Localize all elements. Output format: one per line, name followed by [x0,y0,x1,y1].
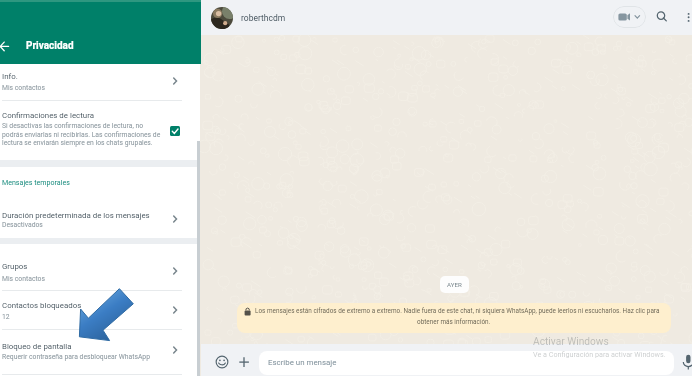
staticText: Activar Windows [533,336,609,348]
staticText: Si desactivas las confirmaciones de lect… [2,122,144,130]
staticText: Info. [2,72,18,81]
staticText: obtener más información. [417,318,491,326]
staticText: Mis contactos [2,275,45,283]
button[interactable]: Confirmaciones de lectura [0,100,196,160]
button[interactable]: Buscar [653,8,671,26]
staticText: Mensajes temporales [2,178,70,186]
staticText: AYER [440,281,469,288]
button[interactable]: Grupos [0,244,196,287]
button[interactable]: Adjuntar [236,354,252,370]
button[interactable]: Videollamada [613,6,646,28]
staticText: Requerir contraseña para desbloquear Wha… [2,353,151,361]
staticText: Grupos [2,262,28,271]
staticText: Desactivados [2,221,43,229]
staticText: Ve a Configuración para activar Windows. [533,350,666,358]
button[interactable]: Foto de perfil [211,7,233,29]
button[interactable]: Emoji [214,354,230,370]
button[interactable]: Menú [683,8,692,26]
button[interactable]: Contactos bloqueados [0,287,196,328]
button[interactable]: Duración predeterminada de los mensajes [0,194,196,238]
staticText: 12 [2,313,10,321]
button[interactable]: Bloqueo de pantalla [0,328,196,373]
staticText: lectura se enviarán siempre en los chats… [2,139,153,147]
staticText: Los mensajes están cifrados de extremo a… [255,307,660,315]
button[interactable]: Atrás [0,36,20,57]
staticText: Mis contactos [2,84,45,92]
staticText: Duración predeterminada de los mensajes [2,211,150,220]
staticText: Privacidad [26,40,74,52]
staticText: roberthcdm [241,13,286,23]
staticText: Confirmaciones de lectura [2,111,94,120]
staticText: Contactos bloqueados [2,301,82,310]
staticText: Bloqueo de pantalla [2,342,72,351]
button[interactable]: Cifrado de extremo a extremo [237,303,671,333]
staticText: Escribe un mensaje [268,358,337,367]
button[interactable]: Escribe un mensaje [259,351,674,375]
staticText: podrás enviarlas ni recibirlas. Las conf… [2,131,161,139]
button[interactable]: Mensaje de voz [681,353,692,372]
button[interactable]: Activar confirmaciones [170,126,180,136]
button[interactable]: Info. [0,64,196,99]
